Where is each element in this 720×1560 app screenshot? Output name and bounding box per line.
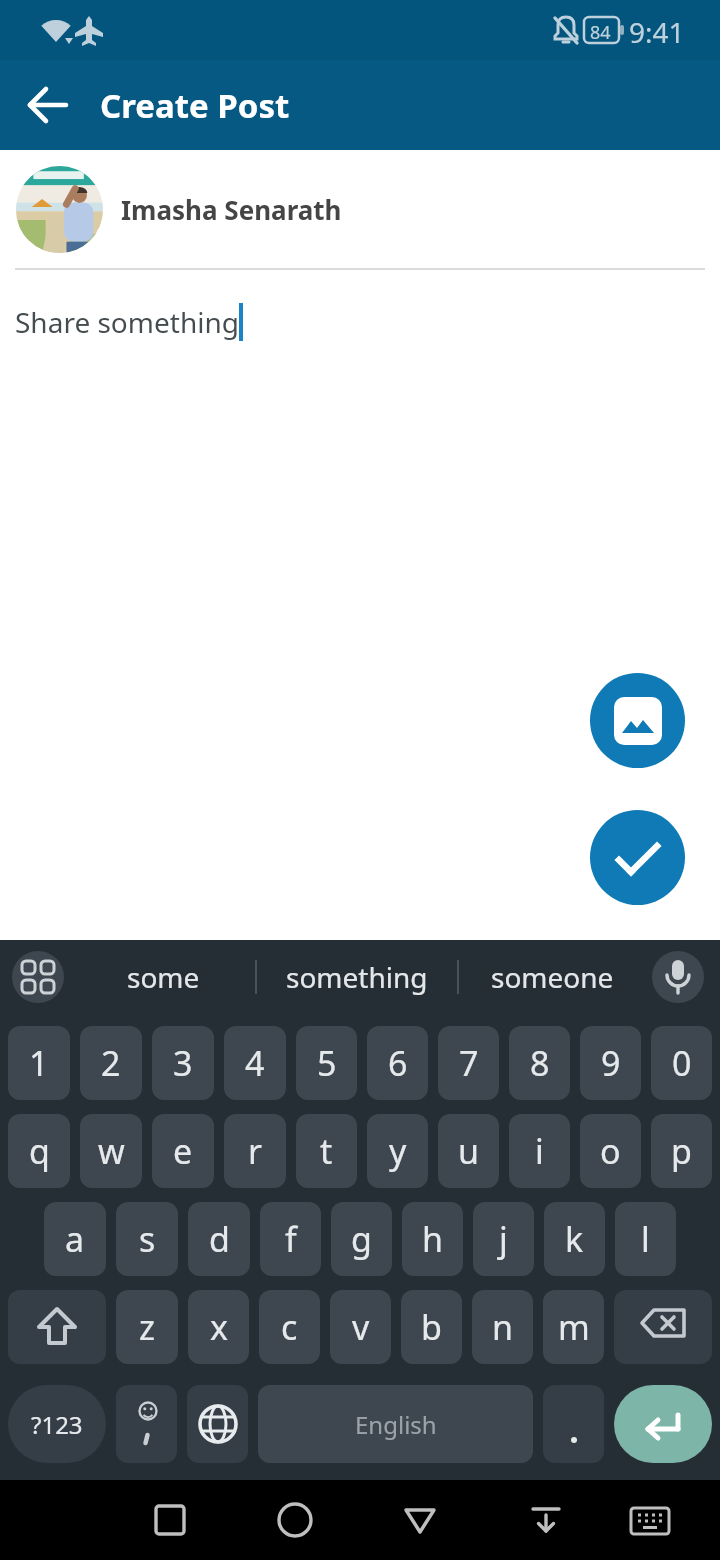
staticText: d [209, 1216, 230, 1262]
button[interactable] [515, 1489, 577, 1551]
staticText: q [29, 1128, 50, 1174]
button[interactable]: i [509, 1114, 570, 1188]
button[interactable]: j [473, 1202, 534, 1276]
staticText: x [210, 1304, 228, 1350]
staticText: n [492, 1304, 514, 1350]
staticText: Create Post [100, 83, 290, 128]
staticText: l [641, 1216, 650, 1262]
staticText: a [65, 1216, 85, 1262]
staticText: 2 [101, 1040, 121, 1086]
staticText: t [320, 1128, 333, 1174]
staticText: 5 [317, 1040, 337, 1086]
staticText: f [285, 1216, 297, 1262]
button[interactable] [590, 673, 685, 768]
button[interactable] [264, 1489, 326, 1551]
button[interactable]: m [543, 1290, 604, 1364]
staticText: h [422, 1216, 444, 1262]
button[interactable] [614, 1290, 712, 1364]
staticText: c [281, 1304, 298, 1350]
button[interactable]: w [80, 1114, 142, 1188]
button[interactable] [652, 951, 704, 1003]
button[interactable]: 9 [580, 1026, 641, 1100]
button[interactable]: h [402, 1202, 463, 1276]
button[interactable]: l [615, 1202, 676, 1276]
button[interactable] [619, 1489, 681, 1551]
button[interactable]: z [116, 1290, 178, 1364]
staticText: k [565, 1216, 584, 1262]
button[interactable] [116, 1385, 177, 1463]
staticText: 1 [29, 1040, 49, 1086]
button[interactable]: something [276, 940, 438, 1014]
staticText: 0 [672, 1040, 692, 1086]
button[interactable]: 6 [367, 1026, 428, 1100]
button[interactable] [187, 1385, 248, 1463]
button[interactable]: 8 [509, 1026, 570, 1100]
button[interactable] [8, 1290, 106, 1364]
staticText: something [286, 958, 428, 996]
button[interactable] [139, 1489, 201, 1551]
staticText: some [127, 958, 200, 996]
button[interactable]: 4 [224, 1026, 286, 1100]
button[interactable]: x [188, 1290, 249, 1364]
staticText: g [351, 1216, 372, 1262]
button[interactable]: d [188, 1202, 250, 1276]
staticText: j [499, 1216, 508, 1262]
button[interactable]: y [367, 1114, 428, 1188]
staticText: o [600, 1128, 621, 1174]
staticText: ?123 [31, 1408, 83, 1441]
staticText: v [352, 1304, 370, 1350]
staticText: 8 [530, 1040, 550, 1086]
button[interactable]: 7 [438, 1026, 499, 1100]
staticText: 9:41 [629, 13, 685, 51]
staticText: Imasha Senarath [121, 192, 342, 227]
staticText: e [173, 1128, 193, 1174]
staticText: 7 [459, 1040, 479, 1086]
button[interactable] [12, 951, 64, 1003]
button[interactable]: g [331, 1202, 392, 1276]
button[interactable]: some [96, 940, 231, 1014]
button[interactable]: k [544, 1202, 605, 1276]
button[interactable]: c [259, 1290, 320, 1364]
button[interactable] [614, 1385, 712, 1463]
button[interactable]: r [224, 1114, 286, 1188]
button[interactable]: ?123 [8, 1385, 106, 1463]
button[interactable] [389, 1489, 451, 1551]
button[interactable]: v [330, 1290, 391, 1364]
staticText: p [671, 1128, 692, 1174]
button[interactable]: s [116, 1202, 178, 1276]
staticText: 4 [245, 1040, 265, 1086]
button[interactable] [543, 1385, 604, 1463]
staticText: 3 [173, 1040, 193, 1086]
button[interactable]: f [260, 1202, 321, 1276]
staticText: y [389, 1128, 407, 1174]
button[interactable]: q [8, 1114, 70, 1188]
button[interactable]: someone [478, 940, 626, 1014]
button[interactable]: 0 [651, 1026, 712, 1100]
button[interactable]: 3 [152, 1026, 214, 1100]
button[interactable]: 1 [8, 1026, 70, 1100]
staticText: z [139, 1304, 155, 1350]
button[interactable]: n [472, 1290, 533, 1364]
button[interactable]: English [258, 1385, 533, 1463]
button[interactable] [590, 810, 685, 905]
button[interactable]: o [580, 1114, 641, 1188]
staticText: i [535, 1128, 544, 1174]
button[interactable]: b [401, 1290, 462, 1364]
button[interactable]: e [152, 1114, 214, 1188]
button[interactable]: p [651, 1114, 712, 1188]
button[interactable] [0, 60, 96, 150]
staticText: Share something [15, 303, 239, 341]
staticText: English [355, 1408, 437, 1441]
staticText: 9 [601, 1040, 621, 1086]
staticText: m [558, 1304, 590, 1350]
button[interactable]: 5 [296, 1026, 357, 1100]
button[interactable]: u [438, 1114, 499, 1188]
button[interactable]: t [296, 1114, 357, 1188]
button[interactable]: 2 [80, 1026, 142, 1100]
staticText: u [458, 1128, 480, 1174]
staticText: 6 [388, 1040, 408, 1086]
staticText: 84 [590, 20, 611, 45]
button[interactable]: a [44, 1202, 106, 1276]
staticText: s [139, 1216, 156, 1262]
staticText: r [248, 1128, 263, 1174]
